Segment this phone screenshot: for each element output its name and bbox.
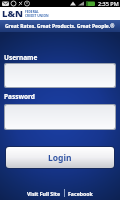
- staticText: Facebook: [68, 190, 93, 197]
- staticText: L&N: [2, 7, 24, 20]
- staticText: Login: [48, 152, 72, 164]
- staticText: 2:35 PM: [98, 0, 119, 7]
- button[interactable]: [5, 64, 115, 87]
- staticText: Visit Full Site: [27, 190, 61, 197]
- button[interactable]: Visit Full Site: [27, 190, 61, 197]
- button[interactable]: Facebook: [68, 190, 93, 197]
- staticText: FEDERAL: [25, 10, 39, 14]
- staticText: CREDIT UNION: [25, 14, 49, 18]
- staticText: Username: [4, 53, 38, 62]
- staticText: Password: [4, 92, 35, 101]
- staticText: Great Rates. Great Products. Great Peopl…: [5, 23, 115, 30]
- button[interactable]: Login: [6, 147, 114, 168]
- button[interactable]: [5, 105, 115, 129]
